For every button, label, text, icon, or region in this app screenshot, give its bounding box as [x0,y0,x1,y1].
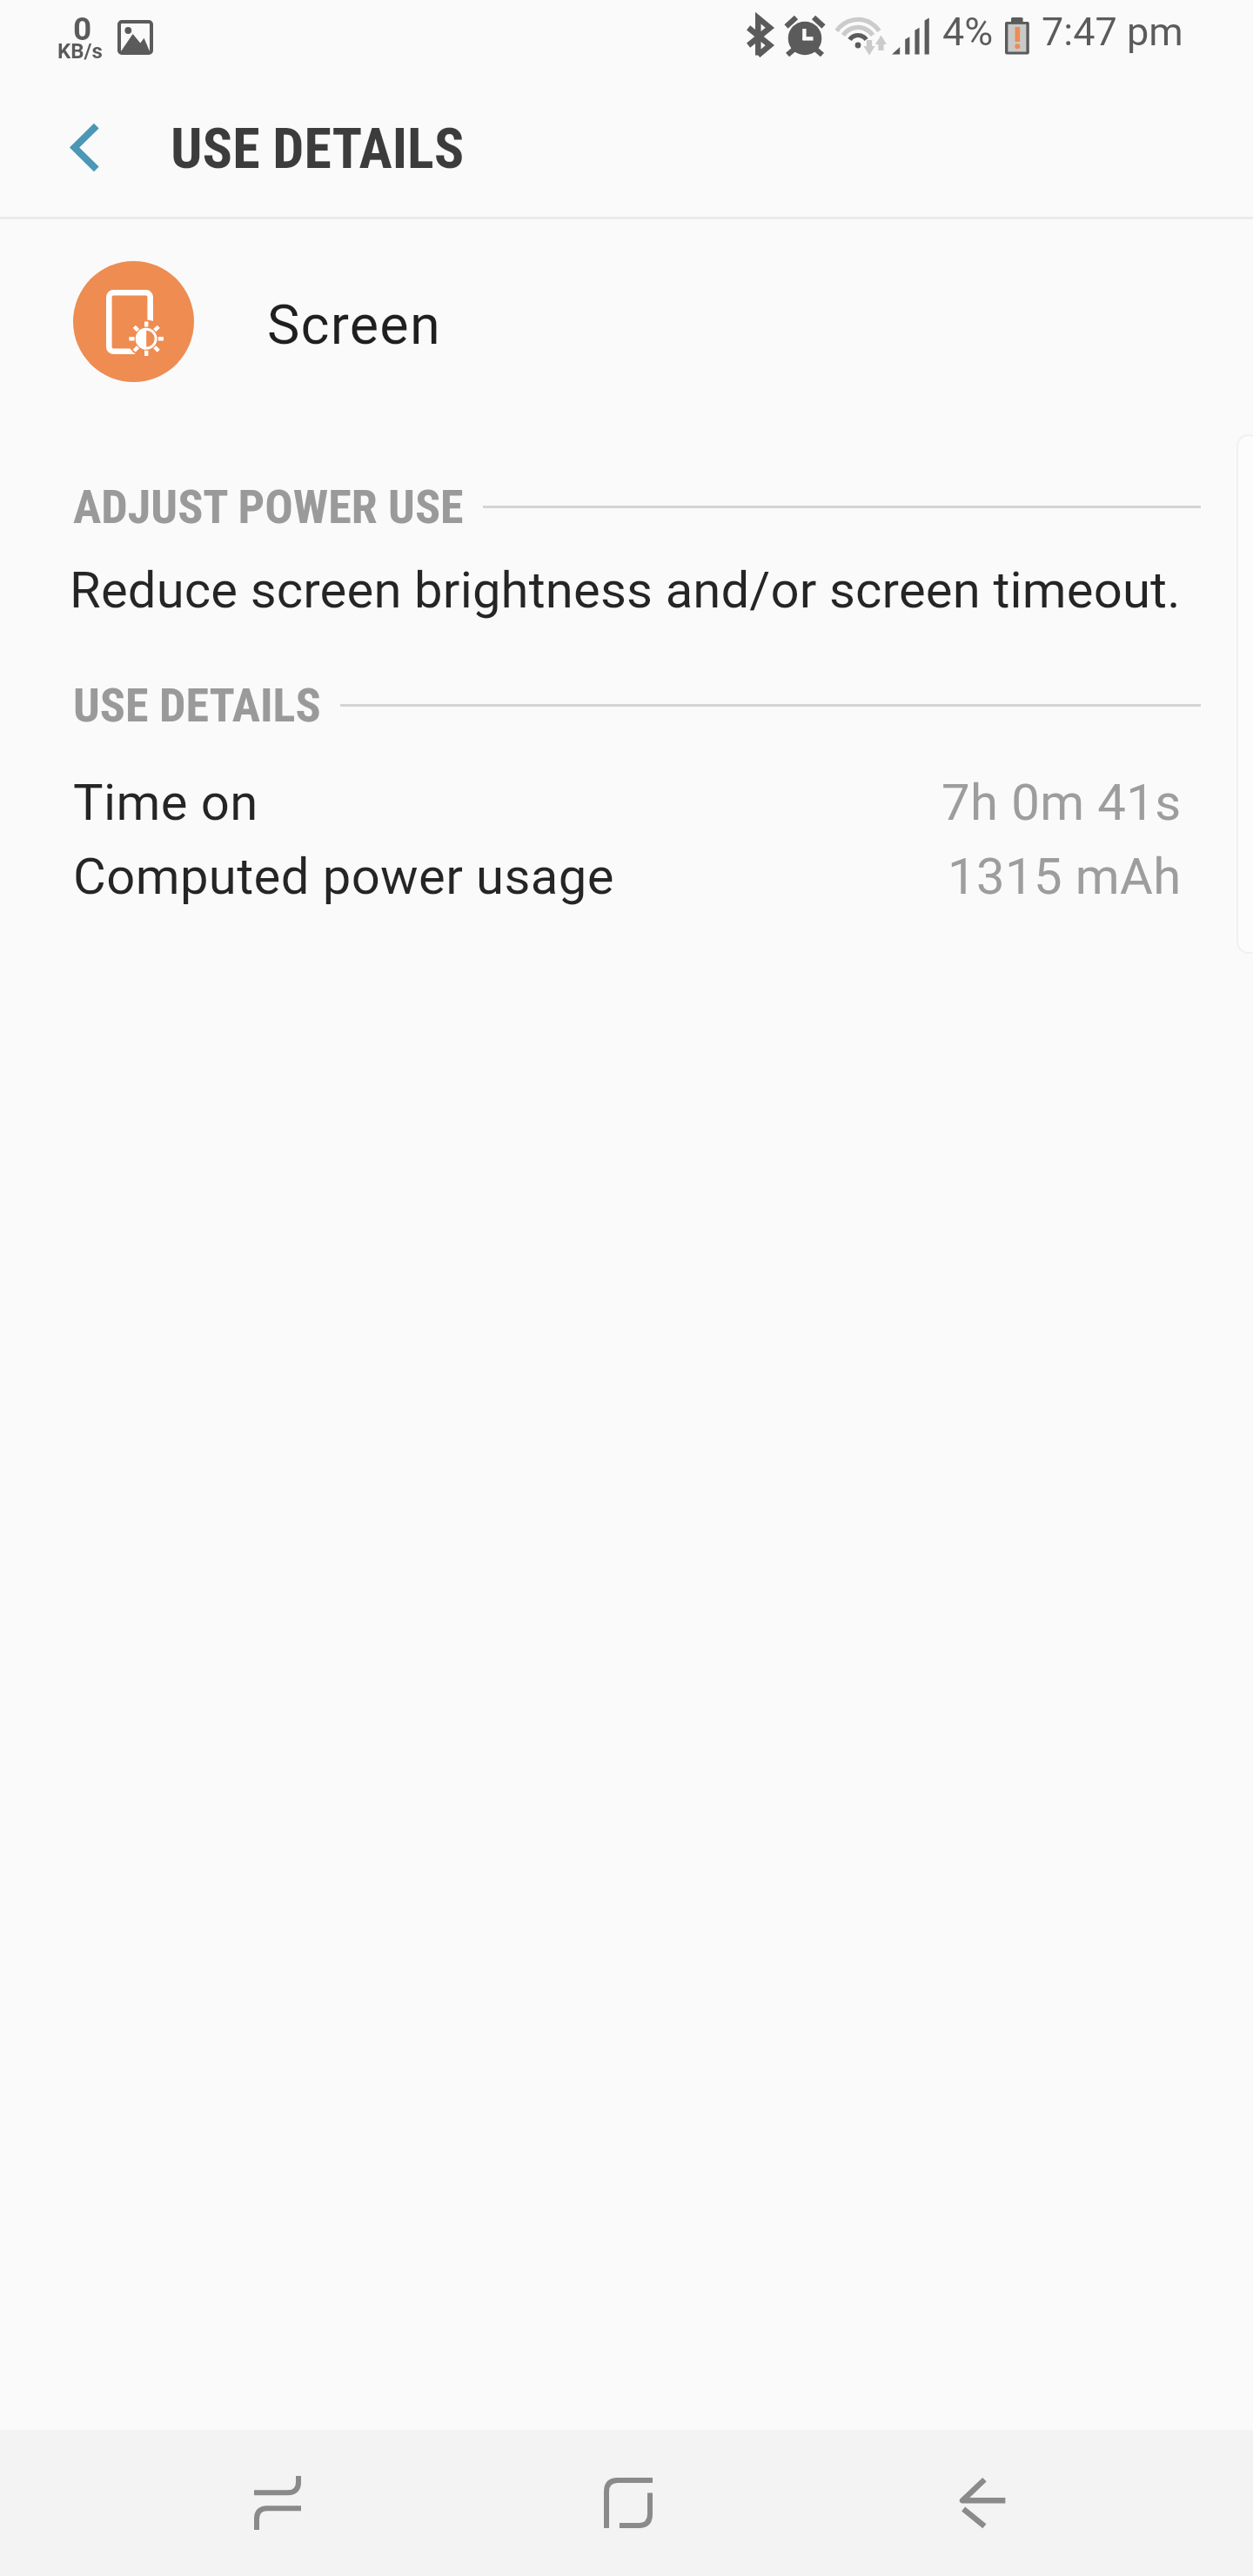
button[interactable]: Time on [73,773,1182,847]
staticText: 4% [942,9,994,55]
staticText: USE DETAILS [73,678,321,733]
staticText: Reduce screen brightness and/or screen t… [70,560,1181,620]
staticText: KB/s [57,39,103,64]
button[interactable]: Computed power usage [73,847,1182,921]
staticText: Time on [73,773,258,832]
staticText: ADJUST POWER USE [73,480,464,534]
button[interactable]: Recent apps [138,2430,417,2576]
staticText: Screen [267,293,441,358]
button[interactable]: Home [489,2430,767,2576]
staticText: 1315 mAh [948,847,1182,906]
staticText: 7h 0m 41s [941,773,1182,832]
button[interactable]: Back [843,2430,1122,2576]
button[interactable]: Screen [0,219,1253,425]
staticText: USE DETAILS [171,117,465,182]
staticText: Computed power usage [73,847,614,906]
staticText: 0 [73,10,92,48]
button[interactable]: Navigate up [41,107,128,187]
staticText: 7:47 pm [1042,9,1183,55]
